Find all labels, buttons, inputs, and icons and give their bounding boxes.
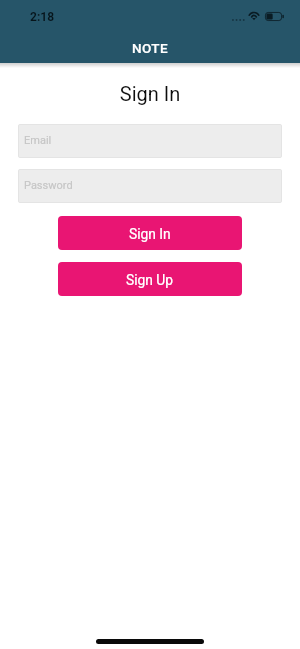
button[interactable]: Sign Up bbox=[58, 262, 242, 296]
staticText: Sign In bbox=[0, 82, 300, 105]
staticText: NOTE bbox=[132, 40, 169, 56]
staticText: Password bbox=[24, 179, 73, 192]
staticText: Sign In bbox=[129, 226, 171, 242]
staticText: Email bbox=[24, 134, 52, 147]
staticText: 2:18 bbox=[30, 10, 55, 24]
other: Battery bbox=[265, 12, 284, 21]
button[interactable]: Sign In bbox=[58, 216, 242, 250]
staticText: Sign Up bbox=[126, 272, 174, 288]
button[interactable]: Password bbox=[18, 169, 282, 203]
other: Wi-Fi bbox=[249, 12, 260, 23]
other: Cellular signal bbox=[232, 18, 245, 22]
button[interactable]: Email bbox=[18, 124, 282, 158]
